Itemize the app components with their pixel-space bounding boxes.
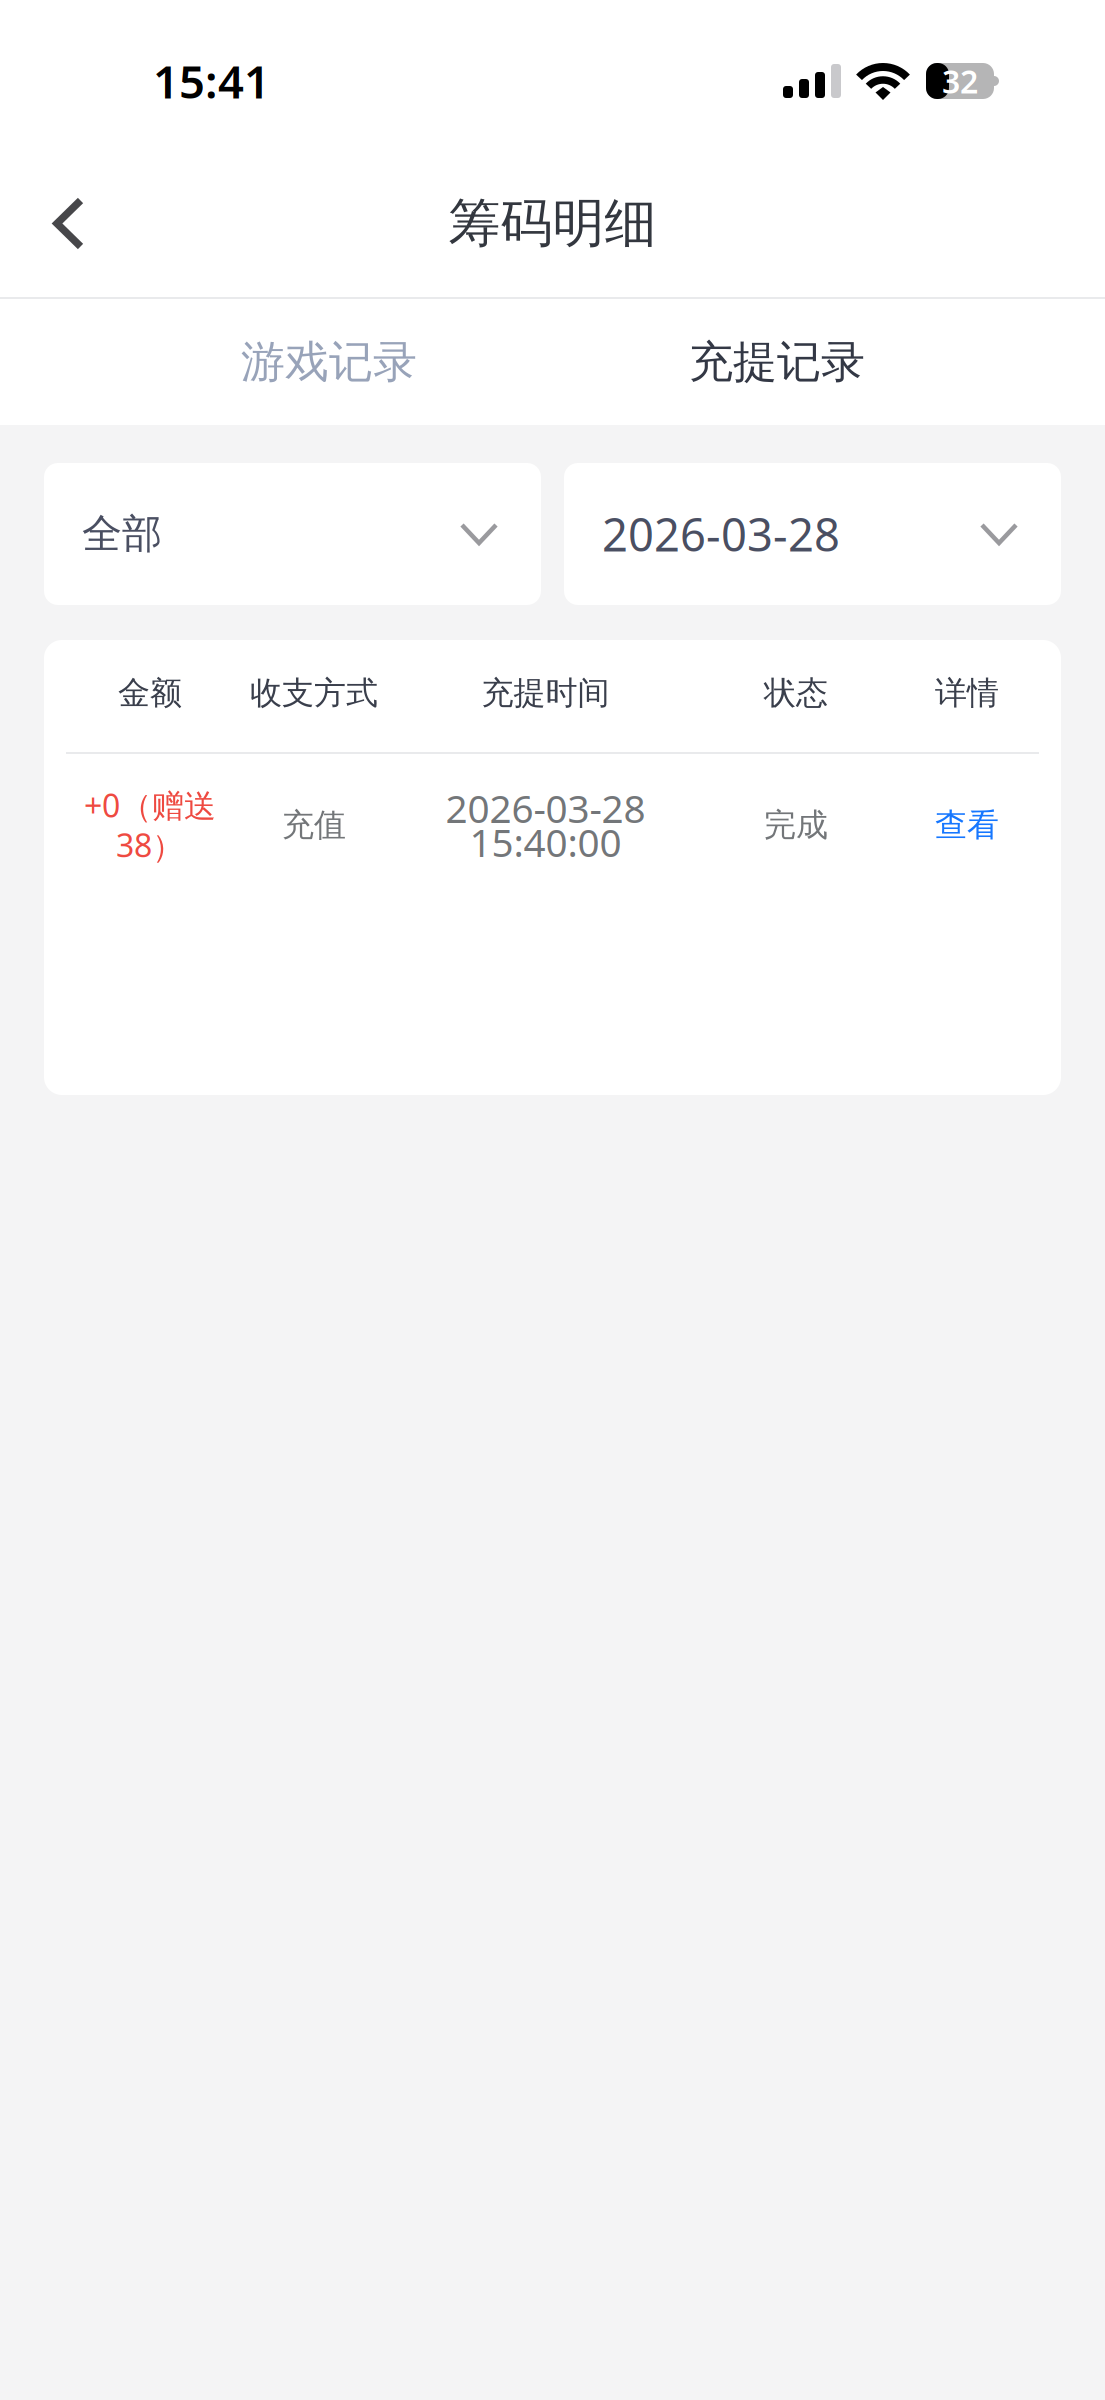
button[interactable]: 2026-03-28 (564, 463, 1061, 605)
staticText: +0（赠送 (84, 784, 216, 826)
staticText: 金额 (118, 673, 182, 713)
staticText: 收支方式 (250, 673, 378, 713)
button[interactable]: 全部 (44, 463, 541, 605)
staticText: 状态 (764, 673, 828, 713)
staticText: 15:40:00 (469, 816, 621, 868)
staticText: 2026-03-28 (445, 782, 645, 834)
staticText: 2026-03-28 (602, 504, 840, 564)
staticText: 游戏记录 (241, 335, 417, 389)
button[interactable]: 充提记录 (612, 298, 942, 426)
staticText: 15:41 (153, 51, 270, 111)
button[interactable]: 游戏记录 (164, 298, 494, 426)
button[interactable]: 查看 (892, 765, 1042, 885)
staticText: 38） (116, 824, 184, 866)
button[interactable]: Back (0, 163, 138, 283)
staticText: 全部 (82, 509, 162, 558)
staticText: 筹码明细 (448, 192, 656, 255)
staticText: 充值 (282, 805, 346, 845)
staticText: 完成 (764, 805, 828, 845)
staticText: 充提时间 (481, 673, 609, 713)
staticText: 32 (942, 60, 978, 102)
staticText: 查看 (935, 805, 999, 845)
staticText: 充提记录 (689, 335, 865, 389)
staticText: 详情 (935, 673, 999, 713)
